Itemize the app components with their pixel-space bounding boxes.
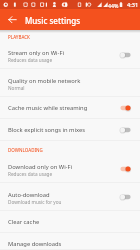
button[interactable]: Download only on Wi-Fi — [0, 155, 140, 183]
button[interactable]: Switch off — [119, 49, 132, 61]
staticText: Manage downloads — [8, 240, 62, 248]
staticText: PLAYBACK — [8, 34, 30, 40]
staticText: Reduces data usage — [8, 171, 53, 177]
staticText: Quality on mobile network — [8, 77, 81, 85]
staticText: 44% — [108, 2, 119, 9]
button[interactable]: Auto-download — [0, 183, 140, 211]
button[interactable]: Switch off — [119, 124, 132, 136]
staticText: Music settings — [25, 15, 81, 26]
staticText: Download music for you — [8, 199, 62, 205]
button[interactable]: Switch on — [119, 102, 132, 114]
button[interactable]: Stream only on Wi-Fi — [0, 41, 140, 69]
button[interactable]: Clear cache — [0, 211, 140, 233]
button[interactable]: Switch on — [119, 163, 132, 175]
staticText: Cache music while streaming — [8, 104, 88, 112]
button[interactable]: Switch off — [119, 191, 132, 203]
button[interactable]: Block explicit songs in mixes — [0, 119, 140, 141]
button[interactable]: Quality on mobile network — [0, 69, 140, 97]
staticText: Auto-download — [8, 191, 50, 199]
button[interactable]: Navigate back — [4, 11, 21, 28]
staticText: DOWNLOADING — [8, 147, 43, 153]
staticText: Normal — [8, 85, 25, 91]
staticText: Reduces data usage — [8, 57, 53, 63]
button[interactable]: Cache music while streaming — [0, 97, 140, 119]
staticText: Clear cache — [8, 218, 40, 226]
staticText: Stream only on Wi-Fi — [8, 49, 64, 57]
staticText: Block explicit songs in mixes — [8, 126, 86, 134]
button[interactable]: Manage downloads — [0, 233, 140, 250]
staticText: 4:31 — [127, 1, 139, 9]
staticText: Download only on Wi-Fi — [8, 163, 72, 171]
